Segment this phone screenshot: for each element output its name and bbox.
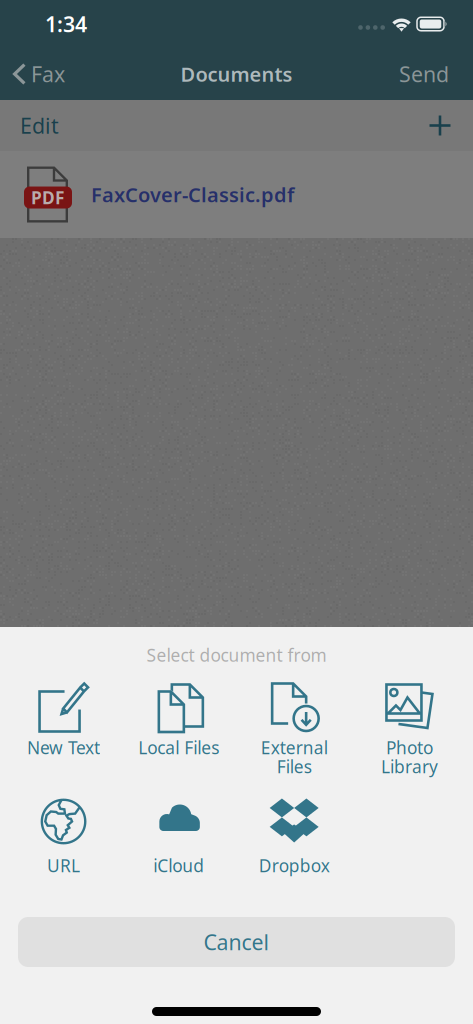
staticText: Send	[399, 60, 449, 88]
staticText: URL	[47, 854, 80, 877]
staticText: External	[261, 736, 328, 759]
staticText: Dropbox	[259, 854, 330, 877]
staticText: 1:34	[45, 10, 87, 38]
button[interactable]: Fax	[0, 48, 65, 100]
staticText: Fax	[31, 60, 65, 88]
staticText: New Text	[27, 736, 100, 759]
button[interactable]: Send	[399, 48, 473, 100]
staticText: Edit	[20, 111, 59, 140]
button[interactable]: URL	[6, 787, 121, 903]
staticText: Documents	[180, 61, 292, 87]
staticText: Select document from	[146, 643, 326, 666]
staticText: Photo	[386, 736, 433, 759]
staticText: Library	[381, 755, 438, 778]
button[interactable]: External	[236, 677, 352, 793]
staticText: Local Files	[138, 736, 219, 759]
button[interactable]: Add document	[429, 100, 473, 151]
button[interactable]: Cancel	[18, 917, 455, 967]
staticText: PDF	[31, 186, 65, 209]
staticText: Cancel	[203, 928, 269, 956]
staticText: FaxCover-Classic.pdf	[91, 181, 294, 208]
button[interactable]: Dropbox	[236, 787, 352, 903]
button[interactable]: Edit	[0, 100, 59, 151]
button[interactable]: PDF	[0, 151, 473, 238]
button[interactable]: Local Files	[121, 677, 236, 793]
button[interactable]: New Text	[6, 677, 121, 793]
staticText: Files	[277, 755, 312, 778]
staticText: iCloud	[153, 854, 204, 877]
button[interactable]: iCloud	[121, 787, 236, 903]
button[interactable]: Photo	[352, 677, 467, 793]
